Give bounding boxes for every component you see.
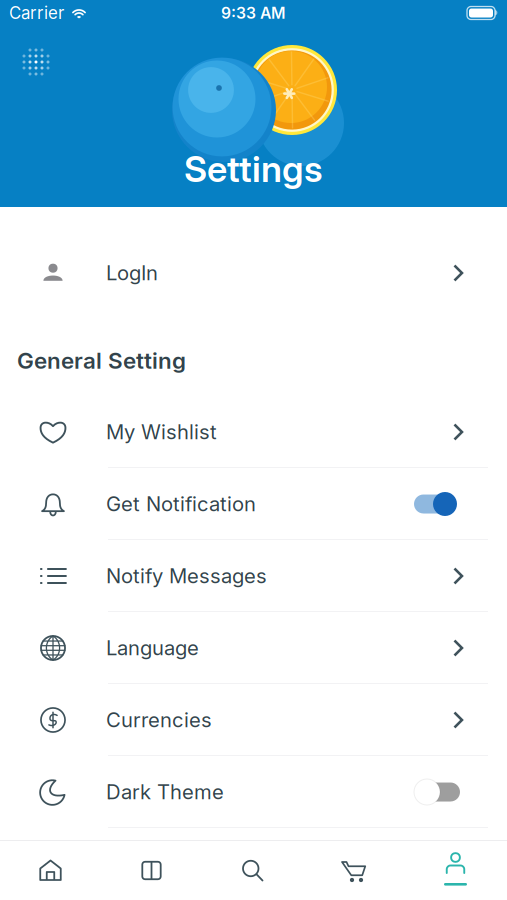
button[interactable]: Search	[202, 841, 303, 900]
button[interactable]: Dark Theme	[0, 756, 507, 828]
staticText: General Setting	[17, 347, 186, 374]
button[interactable]: My Wishlist	[0, 396, 507, 468]
button[interactable]: Notify Messages	[0, 540, 507, 612]
staticText: Language	[106, 636, 199, 660]
staticText: Notify Messages	[106, 564, 267, 588]
staticText: Carrier	[9, 3, 64, 23]
staticText: Settings	[184, 147, 323, 191]
button[interactable]: Cart	[303, 841, 404, 900]
staticText: My Wishlist	[106, 420, 217, 444]
button[interactable]: Home	[0, 841, 101, 900]
button[interactable]: Account	[404, 841, 507, 900]
staticText: Currencies	[106, 708, 212, 732]
button[interactable]: Language	[0, 612, 507, 684]
staticText: Get Notification	[106, 492, 256, 516]
staticText: LogIn	[106, 261, 158, 285]
button[interactable]: Menu	[14, 40, 58, 84]
button[interactable]: Currencies	[0, 684, 507, 756]
button[interactable]: LogIn	[0, 237, 507, 309]
staticText: Dark Theme	[106, 780, 224, 804]
staticText: 9:33 AM	[221, 3, 286, 22]
button[interactable]: Get Notification	[0, 468, 507, 540]
button[interactable]: Categories	[101, 841, 202, 900]
